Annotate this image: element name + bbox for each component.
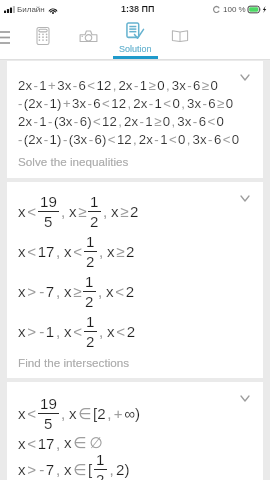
staticText: 2 — [86, 253, 95, 270]
staticText: , — [56, 461, 61, 478]
staticText: , — [56, 243, 61, 260]
staticText: x < 2 — [106, 283, 135, 300]
staticText: x > - 7 — [18, 283, 55, 300]
staticText: , — [61, 203, 66, 220]
staticText: x < — [64, 243, 83, 260]
staticText: x ∈ [ — [64, 461, 93, 479]
staticText: Find the intersections — [18, 356, 130, 369]
staticText: 100 % — [223, 5, 246, 14]
button[interactable]: Solution — [112, 18, 159, 60]
staticText: x < — [64, 323, 83, 340]
staticText: x ≥ — [69, 203, 87, 220]
staticText: x < — [18, 203, 37, 220]
staticText: 2 — [96, 471, 105, 480]
staticText: , — [56, 283, 61, 300]
staticText: 19 — [40, 193, 57, 210]
staticText: 19 — [40, 395, 57, 412]
staticText: - (2x - 1) + 3x - 6 < 12 , 2x - 1 < 0 , … — [18, 96, 234, 111]
staticText: 2 — [86, 333, 95, 350]
staticText: x ∈ [2 , + ∞) — [69, 405, 141, 423]
staticText: , — [98, 283, 103, 300]
button[interactable]: Dictionary — [164, 20, 196, 52]
staticText: , — [99, 243, 104, 260]
staticText: x < 2 — [107, 323, 136, 340]
staticText: Solution — [119, 44, 152, 54]
staticText: 2x - 1 + 3x - 6 < 12 , 2x - 1 ≥ 0 , 3x -… — [18, 78, 218, 93]
staticText: , — [103, 203, 108, 220]
staticText: 5 — [44, 415, 53, 432]
staticText: , — [56, 435, 61, 452]
staticText: 1 — [86, 233, 95, 250]
staticText: x ≥ 2 — [111, 203, 139, 220]
staticText: , — [61, 405, 66, 422]
button[interactable]: Camera — [72, 20, 104, 52]
staticText: , — [99, 323, 104, 340]
staticText: 2x - 1 - (3x - 6) < 12 , 2x - 1 ≥ 0 , 3x… — [18, 114, 225, 129]
button[interactable]: Menu — [0, 24, 16, 50]
staticText: x < — [18, 405, 37, 422]
staticText: 1 — [86, 313, 95, 330]
staticText: x ≥ — [64, 283, 82, 300]
staticText: 5 — [44, 213, 53, 230]
staticText: 1:38 ПП — [121, 4, 155, 14]
staticText: x > - 7 — [18, 461, 55, 478]
staticText: 1 — [90, 193, 99, 210]
staticText: , — [56, 323, 61, 340]
staticText: Билайн — [17, 5, 45, 14]
staticText: - (2x - 1) - (3x - 6) < 12 , 2x - 1 < 0 … — [18, 132, 240, 147]
staticText: x ≥ 2 — [107, 243, 135, 260]
staticText: Solve the inequalities — [18, 155, 129, 168]
staticText: x < 17 — [18, 435, 55, 452]
staticText: x < 17 — [18, 243, 55, 260]
staticText: x ∈ ∅ — [64, 434, 103, 452]
staticText: x > - 1 — [18, 323, 55, 340]
staticText: 1 — [85, 273, 94, 290]
staticText: 2 — [85, 293, 94, 310]
staticText: 1 — [96, 451, 105, 468]
button[interactable]: Calculator — [27, 20, 59, 52]
staticText: 2 — [90, 213, 99, 230]
staticText: , 2) — [108, 461, 130, 478]
